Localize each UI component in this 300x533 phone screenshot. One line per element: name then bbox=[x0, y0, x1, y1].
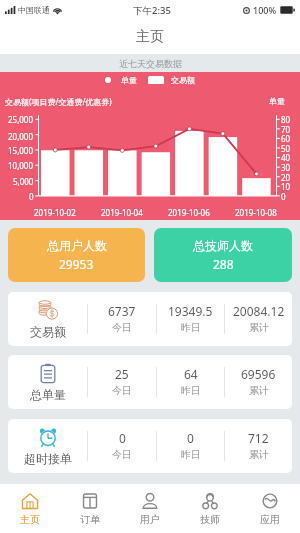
staticText: 100% bbox=[253, 4, 277, 16]
staticText: 近七天交易数据 bbox=[119, 58, 182, 69]
staticText: 70 bbox=[281, 124, 291, 135]
staticText: 80 bbox=[281, 114, 291, 125]
staticText: 69596 bbox=[241, 366, 276, 382]
staticText: 单量 bbox=[269, 96, 285, 106]
staticText: 2019-10-04 bbox=[101, 207, 143, 218]
staticText: 主页 bbox=[136, 28, 164, 46]
staticText: 20,000 bbox=[8, 131, 34, 142]
staticText: 25,000 bbox=[8, 114, 34, 125]
button[interactable]: 交易额 bbox=[8, 292, 292, 346]
button[interactable]: 订单 bbox=[60, 484, 120, 533]
staticText: 用户 bbox=[140, 513, 160, 526]
staticText: 今日 bbox=[112, 384, 132, 397]
staticText: 累计 bbox=[249, 448, 269, 461]
staticText: 累计 bbox=[249, 384, 269, 397]
staticText: 技师 bbox=[200, 513, 220, 526]
staticText: 712 bbox=[248, 430, 269, 446]
staticText: 10 bbox=[281, 181, 291, 192]
staticText: 应用 bbox=[260, 513, 280, 526]
button[interactable]: 主页 bbox=[0, 484, 60, 533]
staticText: 0 bbox=[119, 430, 126, 446]
staticText: 超时接单 bbox=[24, 451, 72, 466]
staticText: 20084.12 bbox=[233, 303, 285, 319]
staticText: 昨日 bbox=[181, 384, 201, 397]
staticText: 交易额 bbox=[30, 324, 66, 339]
button[interactable]: 超时接单 bbox=[8, 419, 292, 473]
staticText: 今日 bbox=[112, 321, 132, 334]
staticText: 昨日 bbox=[181, 321, 201, 334]
staticText: 6737 bbox=[108, 303, 136, 319]
staticText: 总技师人数 bbox=[193, 238, 253, 253]
staticText: 30 bbox=[281, 162, 291, 173]
staticText: 总用户人数 bbox=[47, 238, 107, 253]
button[interactable]: 技师 bbox=[180, 484, 240, 533]
staticText: 总单量 bbox=[30, 387, 66, 402]
staticText: 19349.5 bbox=[168, 303, 213, 319]
staticText: 0 bbox=[281, 191, 286, 202]
staticText: 2019-10-02 bbox=[34, 207, 76, 218]
staticText: 订单 bbox=[80, 513, 100, 526]
staticText: 5,000 bbox=[13, 176, 34, 187]
button[interactable]: 总单量 bbox=[8, 355, 292, 409]
staticText: 累计 bbox=[249, 321, 269, 334]
staticText: 29953 bbox=[59, 256, 94, 272]
staticText: 20 bbox=[281, 172, 291, 183]
button[interactable]: 用户 bbox=[120, 484, 180, 533]
staticText: 交易额 bbox=[171, 75, 195, 85]
staticText: 288 bbox=[213, 256, 234, 272]
staticText: 2019-10-08 bbox=[235, 207, 277, 218]
staticText: 15,000 bbox=[8, 145, 34, 156]
staticText: 交易额(项目费/交通费/优惠券) bbox=[5, 96, 112, 107]
staticText: 10,000 bbox=[8, 160, 34, 171]
staticText: 下午2:35 bbox=[133, 4, 171, 17]
button[interactable]: 总用户人数 bbox=[8, 228, 145, 282]
staticText: 单量 bbox=[121, 75, 137, 85]
staticText: 0 bbox=[187, 430, 194, 446]
staticText: 64 bbox=[184, 366, 198, 382]
staticText: 50 bbox=[281, 143, 291, 154]
staticText: 昨日 bbox=[181, 448, 201, 461]
staticText: 0 bbox=[29, 191, 34, 202]
staticText: 主页 bbox=[20, 513, 40, 526]
staticText: 2019-10-06 bbox=[168, 207, 210, 218]
button[interactable]: 总技师人数 bbox=[154, 228, 292, 282]
staticText: 25 bbox=[115, 366, 129, 382]
staticText: 60 bbox=[281, 133, 291, 144]
staticText: 今日 bbox=[112, 448, 132, 461]
staticText: 40 bbox=[281, 152, 291, 163]
button[interactable]: 应用 bbox=[240, 484, 300, 533]
staticText: 中国联通 bbox=[18, 5, 50, 15]
